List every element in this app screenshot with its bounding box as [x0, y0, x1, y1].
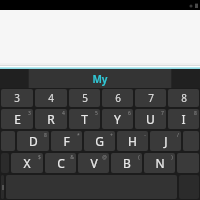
button[interactable]: My [29, 69, 171, 88]
staticText: 5 [95, 110, 98, 117]
button[interactable]: X [11, 153, 43, 173]
button[interactable]: T [69, 109, 100, 129]
staticText: + [110, 132, 113, 139]
button[interactable]: Y [102, 109, 133, 129]
button[interactable]: N [144, 153, 175, 173]
staticText: F [63, 133, 70, 149]
button[interactable]: U [135, 109, 166, 129]
staticText: 7 [161, 110, 164, 117]
staticText: & [70, 154, 74, 161]
staticText: Y [114, 111, 121, 127]
staticText: H [128, 133, 137, 149]
button[interactable]: I [168, 109, 199, 129]
staticText: 6 [115, 91, 121, 105]
button[interactable]: F [51, 131, 82, 151]
staticText: My [92, 72, 108, 86]
staticText: C [57, 155, 65, 171]
button[interactable]: D [17, 131, 49, 151]
button[interactable]: R [35, 109, 67, 129]
button[interactable]: 5 [69, 89, 100, 107]
staticText: * [77, 132, 80, 139]
staticText: 4 [48, 91, 54, 105]
staticText: / [177, 132, 179, 139]
staticText: T [81, 111, 88, 127]
staticText: 3 [28, 110, 31, 117]
staticText: 5 [82, 91, 88, 105]
staticText: V [90, 155, 98, 171]
button[interactable]: B [111, 153, 142, 173]
staticText: R [47, 111, 55, 127]
staticText: 4 [62, 110, 65, 117]
staticText: 8 [181, 91, 187, 105]
staticText: ) [171, 154, 173, 161]
button[interactable]: Symbols [1, 175, 4, 199]
staticText: B [123, 155, 131, 171]
staticText: ( [138, 154, 140, 161]
button[interactable]: 8 [168, 89, 199, 107]
staticText: 3 [14, 91, 20, 105]
staticText: E [14, 111, 21, 127]
button[interactable]: E [1, 109, 33, 129]
staticText: 8 [194, 110, 197, 117]
button[interactable]: 7 [135, 89, 166, 107]
staticText: $ [38, 154, 41, 161]
button[interactable]: 4 [35, 89, 67, 107]
button[interactable]: G [84, 131, 115, 151]
button[interactable]: H [117, 131, 148, 151]
staticText: U [146, 111, 155, 127]
button[interactable]: 6 [102, 89, 133, 107]
staticText: @ [102, 154, 107, 161]
staticText: X [23, 155, 31, 171]
staticText: 6 [128, 110, 131, 117]
staticText: N [155, 155, 165, 171]
staticText: 7 [148, 91, 154, 105]
staticText: D [29, 133, 38, 149]
button[interactable]: C [45, 153, 76, 173]
button[interactable]: V [78, 153, 109, 173]
button[interactable]: 3 [1, 89, 33, 107]
staticText: - [144, 132, 146, 139]
staticText: I [181, 111, 186, 127]
staticText: G [95, 133, 104, 149]
staticText: 8 [44, 132, 47, 139]
button[interactable]: J [150, 131, 181, 151]
staticText: J [164, 133, 168, 149]
